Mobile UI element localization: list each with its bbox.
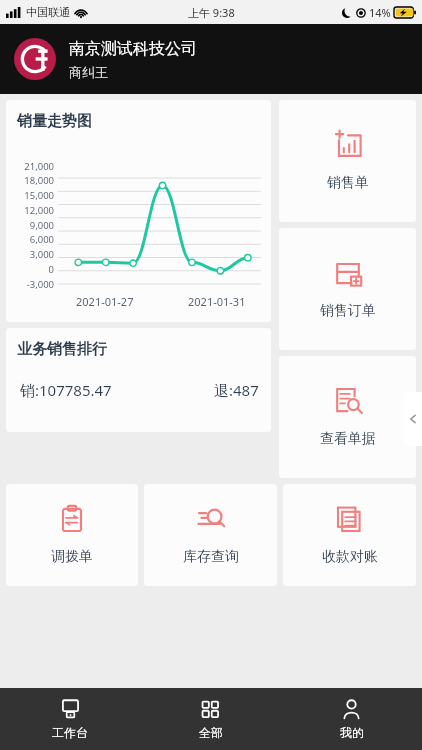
staticText: 6,000: [6, 233, 54, 246]
staticText: 销:107785.47: [20, 380, 112, 400]
staticText: 销售订单: [320, 302, 376, 320]
button[interactable]: 销量走势图: [6, 100, 271, 322]
staticText: 商纠王: [69, 64, 108, 80]
button[interactable]: 工作台: [0, 688, 140, 750]
button[interactable]: 业务销售排行: [6, 328, 271, 432]
staticText: 2021-01-31: [188, 294, 246, 309]
staticText: 调拨单: [51, 548, 93, 566]
button[interactable]: 库存查询: [144, 484, 277, 586]
staticText: 收款对账: [322, 548, 378, 566]
staticText: 我的: [340, 725, 364, 740]
staticText: 工作台: [52, 725, 88, 740]
button[interactable]: 展开: [404, 392, 422, 446]
staticText: 全部: [199, 725, 223, 740]
staticText: 18,000: [6, 174, 54, 187]
button[interactable]: 查看单据: [279, 356, 416, 478]
button[interactable]: 全部: [140, 688, 281, 750]
staticText: -3,000: [6, 278, 54, 291]
staticText: 查看单据: [320, 430, 376, 448]
staticText: 12,000: [6, 204, 54, 217]
staticText: 14%: [369, 5, 391, 20]
staticText: 0: [6, 263, 54, 276]
staticText: 南京测试科技公司: [69, 39, 197, 59]
staticText: 销售单: [327, 174, 369, 192]
button[interactable]: 销售单: [279, 100, 416, 222]
staticText: 退:487: [214, 380, 259, 400]
staticText: 21,000: [6, 160, 54, 173]
staticText: 中国联通: [26, 5, 70, 19]
staticText: 销量走势图: [17, 112, 92, 131]
button[interactable]: 我的: [281, 688, 422, 750]
staticText: 3,000: [6, 248, 54, 261]
staticText: 9,000: [6, 219, 54, 232]
button[interactable]: 调拨单: [6, 484, 138, 586]
staticText: 业务销售排行: [17, 340, 107, 359]
button[interactable]: 销售订单: [279, 228, 416, 350]
staticText: 15,000: [6, 189, 54, 202]
staticText: 2021-01-27: [76, 294, 134, 309]
staticText: 库存查询: [183, 548, 239, 566]
button[interactable]: 收款对账: [283, 484, 416, 586]
staticText: 上午 9:38: [188, 5, 235, 20]
